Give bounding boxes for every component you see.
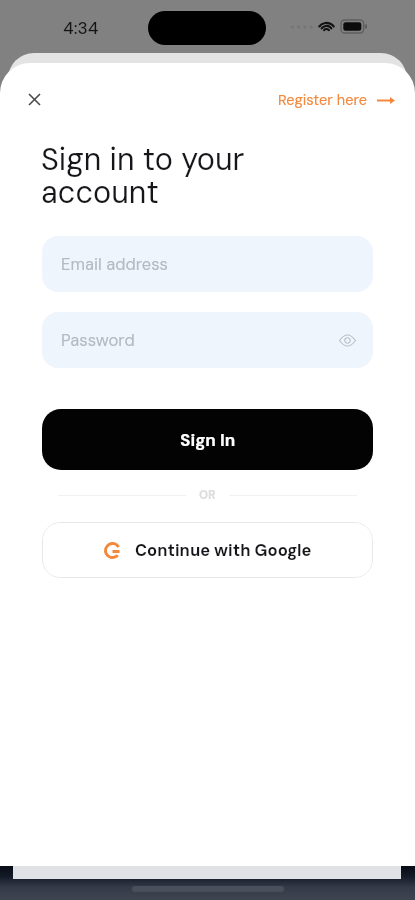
staticText: Email address (61, 254, 168, 275)
button[interactable]: Register here (271, 86, 402, 115)
button[interactable]: Email address (42, 236, 373, 292)
staticText: OR (199, 487, 216, 503)
staticText: Password (61, 330, 135, 351)
staticText: Sign in to your account (41, 140, 245, 213)
button[interactable]: Close (19, 84, 49, 114)
staticText: Register here (278, 91, 367, 110)
staticText: 4:34 (63, 17, 99, 39)
button[interactable]: Show password (333, 326, 361, 354)
button[interactable]: Continue with Google (42, 522, 373, 578)
button[interactable]: Sign In (42, 409, 373, 470)
button[interactable]: Password (42, 312, 373, 368)
staticText: Sign In (180, 429, 236, 451)
staticText: Continue with Google (135, 540, 312, 561)
